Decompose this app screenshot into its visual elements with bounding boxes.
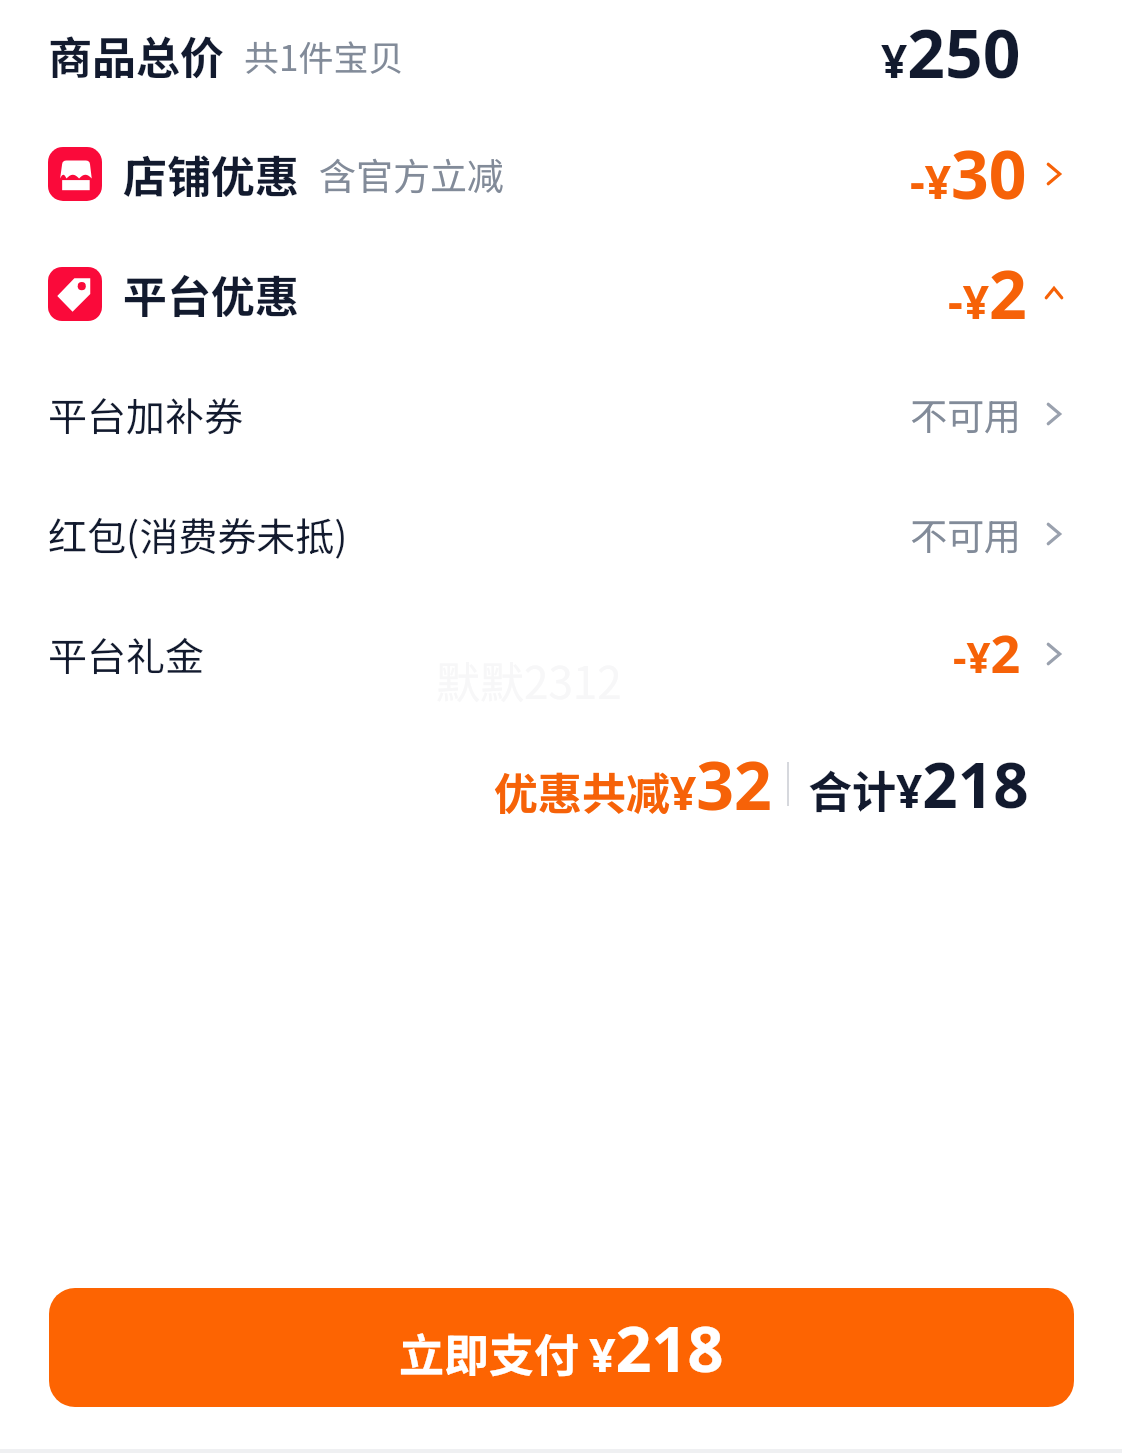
staticText: 优惠共减¥32 bbox=[494, 739, 772, 829]
button[interactable]: 红包(消费券未抵) bbox=[0, 474, 1122, 594]
staticText: 红包(消费券未抵) bbox=[48, 506, 348, 562]
button[interactable]: 平台加补券 bbox=[0, 354, 1122, 474]
staticText: -¥2 bbox=[948, 248, 1027, 338]
other: 红包(消费券未抵) bbox=[1034, 514, 1074, 554]
other: 收起平台优惠 bbox=[1034, 274, 1074, 314]
staticText: 平台礼金 bbox=[48, 626, 205, 682]
other: 店铺优惠详情 bbox=[1034, 154, 1074, 194]
staticText: 商品总价 bbox=[48, 23, 224, 87]
staticText: 合计¥218 bbox=[808, 742, 1029, 826]
other: 平台礼金 bbox=[1034, 634, 1074, 674]
staticText: 默默2312 bbox=[436, 648, 622, 712]
staticText: 立即支付 ¥218 bbox=[399, 1305, 724, 1391]
button[interactable]: 店铺优惠 bbox=[0, 114, 1122, 234]
button[interactable]: 平台优惠 bbox=[0, 234, 1122, 354]
staticText: 平台加补券 bbox=[48, 386, 244, 442]
other: 平台加补券 bbox=[1034, 394, 1074, 434]
staticText: 含官方立减 bbox=[319, 147, 504, 201]
staticText: ¥250 bbox=[881, 7, 1021, 97]
button[interactable]: 平台礼金 bbox=[0, 594, 1122, 714]
staticText: 店铺优惠 bbox=[123, 142, 299, 206]
staticText: 共1件宝贝 bbox=[244, 30, 404, 81]
staticText: 不可用 bbox=[910, 387, 1021, 441]
staticText: -¥2 bbox=[953, 617, 1021, 688]
staticText: 不可用 bbox=[910, 507, 1021, 561]
staticText: 平台优惠 bbox=[123, 262, 299, 326]
staticText: -¥30 bbox=[910, 128, 1027, 218]
button[interactable]: 立即支付 ¥218 bbox=[49, 1288, 1074, 1407]
